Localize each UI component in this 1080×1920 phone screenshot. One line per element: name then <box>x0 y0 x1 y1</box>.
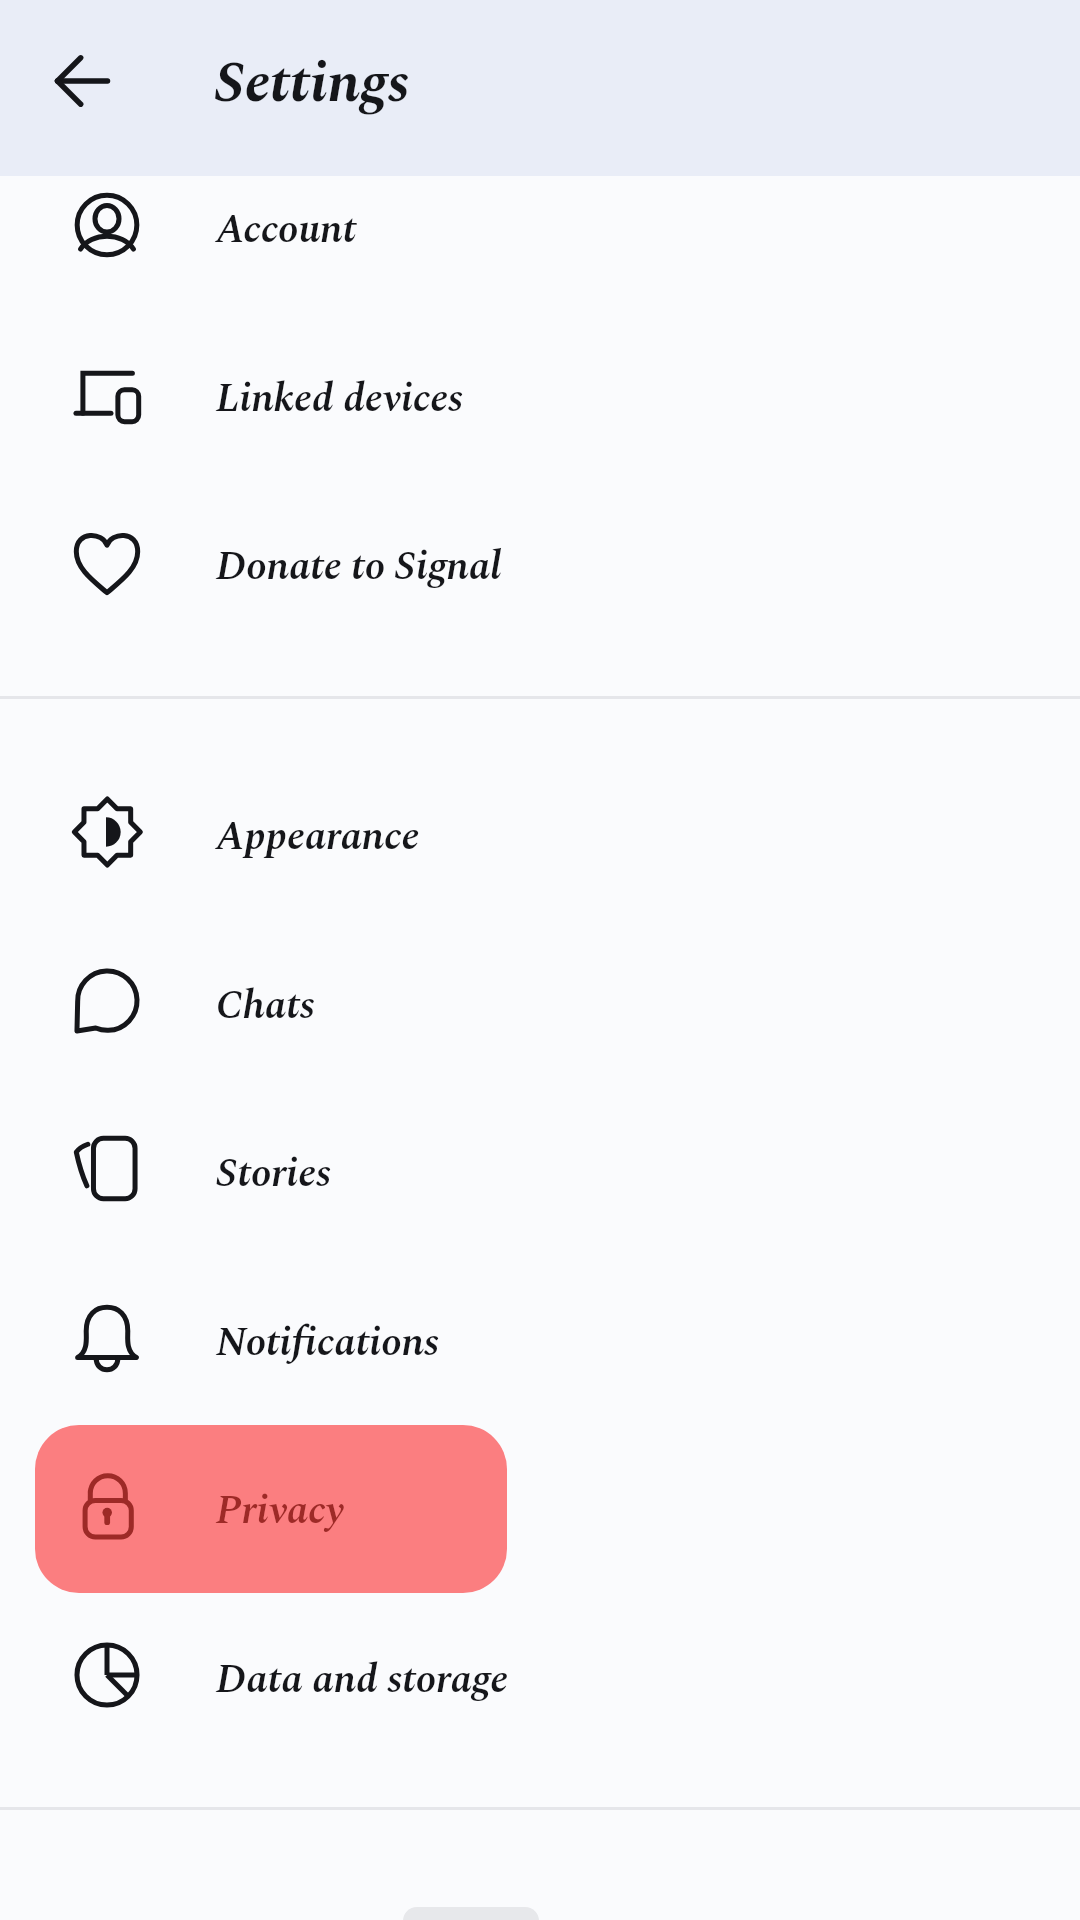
button[interactable]: Appearance <box>0 748 1080 916</box>
staticText: Notifications <box>216 1312 439 1374</box>
button[interactable]: Data and storage <box>0 1591 1080 1759</box>
button[interactable]: Stories <box>0 1085 1080 1253</box>
staticText: Data and storage <box>216 1649 508 1711</box>
button[interactable]: Back <box>47 46 117 116</box>
button[interactable]: Donate to Signal <box>0 478 1080 646</box>
button[interactable]: Account <box>0 141 1080 309</box>
button[interactable]: Linked devices <box>0 310 1080 478</box>
button[interactable]: Privacy <box>0 1422 1080 1590</box>
button[interactable]: Chats <box>0 917 1080 1085</box>
staticText: Settings <box>214 40 410 128</box>
button[interactable]: Notifications <box>0 1254 1080 1422</box>
staticText: Linked devices <box>216 368 463 430</box>
staticText: Account <box>216 199 356 261</box>
staticText: Chats <box>216 975 315 1037</box>
staticText: Appearance <box>216 806 419 868</box>
staticText: Privacy <box>216 1480 344 1542</box>
staticText: Donate to Signal <box>216 536 502 598</box>
staticText: Stories <box>216 1143 331 1205</box>
